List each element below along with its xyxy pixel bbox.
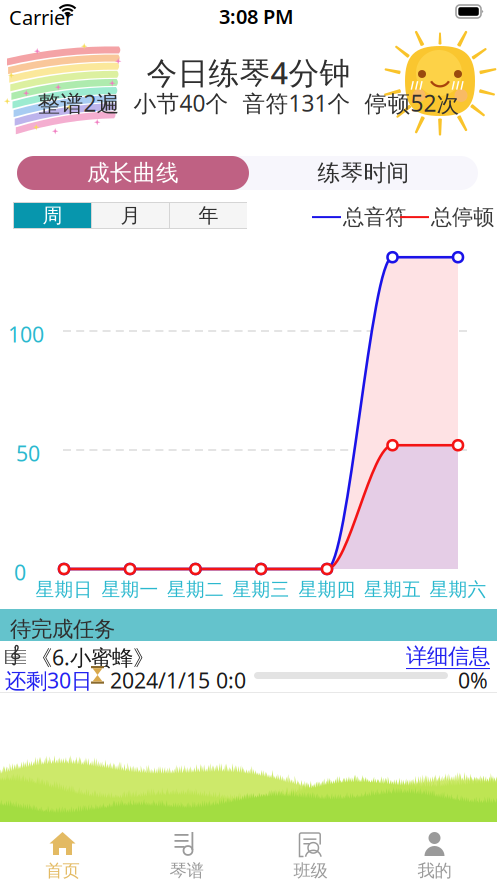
staticText: 星期日 — [35, 578, 92, 601]
staticText: 2024/1/15 0:0 — [110, 666, 246, 694]
button[interactable]: 班级 — [248, 822, 372, 883]
staticText: 星期五 — [364, 578, 421, 601]
staticText: 首页 — [45, 860, 79, 881]
staticText: 详细信息 — [406, 643, 490, 669]
button[interactable]: 练琴时间 — [249, 156, 478, 190]
staticText: 星期一 — [101, 578, 158, 601]
staticText: 星期四 — [298, 578, 355, 601]
staticText: 年 — [198, 203, 218, 228]
staticText: 星期二 — [167, 578, 224, 601]
staticText: 今日练琴4分钟 — [146, 52, 350, 93]
staticText: 50 — [16, 439, 40, 467]
staticText: 《6.小蜜蜂》 — [31, 643, 154, 671]
staticText: 100 — [8, 320, 44, 348]
staticText: 琴谱 — [169, 860, 203, 881]
staticText: 成长曲线 — [87, 159, 179, 187]
staticText: 待完成任务 — [10, 616, 115, 642]
staticText: 练琴时间 — [317, 159, 409, 187]
button[interactable]: 首页 — [0, 822, 124, 883]
button[interactable]: 成长曲线 — [17, 156, 249, 190]
staticText: 星期三 — [232, 578, 289, 601]
staticText: 总音符 — [343, 204, 406, 230]
button[interactable]: 年 — [170, 203, 247, 228]
staticText: 0 — [14, 558, 26, 586]
button[interactable]: 我的 — [372, 822, 496, 883]
staticText: 整谱2遍 小节40个 音符131个 停顿52次 — [37, 88, 459, 118]
staticText: 我的 — [417, 860, 451, 881]
staticText: 星期六 — [429, 578, 486, 601]
staticText: 3:08 PM — [219, 3, 294, 30]
staticText: 月 — [120, 203, 140, 228]
button[interactable]: 《6.小蜜蜂》 — [0, 641, 497, 692]
button[interactable]: 月 — [92, 203, 169, 228]
staticText: 班级 — [293, 860, 327, 881]
staticText: 周 — [42, 203, 62, 228]
staticText: 还剩30日 — [5, 666, 92, 694]
staticText: Carrier — [9, 4, 73, 31]
button[interactable]: 周 — [14, 203, 91, 228]
button[interactable]: 琴谱 — [124, 822, 248, 883]
staticText: 总停顿 — [431, 204, 494, 230]
staticText: 0% — [458, 666, 488, 694]
